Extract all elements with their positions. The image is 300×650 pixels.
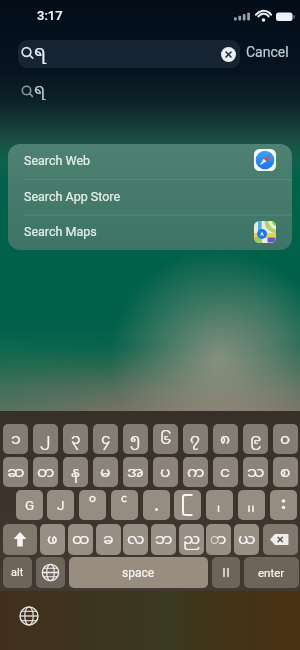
button[interactable]: alt (3, 557, 32, 588)
staticText: ဖ (47, 529, 58, 550)
button[interactable]: Cancel (246, 44, 294, 64)
button[interactable]: ခ (96, 524, 121, 555)
staticText: တ (37, 462, 55, 483)
button[interactable] (14, 601, 44, 631)
staticText: 3:17 (37, 8, 63, 23)
button[interactable]: ၅ (123, 424, 148, 454)
staticText: ဘ (155, 529, 173, 550)
staticText: န (71, 462, 80, 483)
button[interactable]: ၇ (183, 424, 208, 454)
staticText: ည (183, 529, 201, 550)
staticText: ၁ (11, 429, 21, 450)
staticText: ယ (238, 529, 256, 550)
button[interactable]: လ (123, 524, 148, 555)
button[interactable]: ၃ (63, 424, 88, 454)
button[interactable]: ပ (153, 457, 178, 487)
button[interactable]: space (69, 557, 208, 588)
button[interactable]: ဆ (3, 457, 28, 487)
button[interactable]: သ (243, 457, 268, 487)
button[interactable] (36, 557, 65, 588)
staticText: ရ (34, 41, 46, 64)
button[interactable]: G (16, 490, 43, 520)
button[interactable] (221, 47, 236, 62)
button[interactable]: J (47, 490, 74, 520)
button[interactable]: ယ (234, 524, 259, 555)
button[interactable]: ၉ (243, 424, 268, 454)
button[interactable] (8, 215, 292, 250)
button[interactable]: ၂ (33, 424, 58, 454)
button[interactable]: ၄ (93, 424, 118, 454)
staticText: ဆ (7, 462, 25, 483)
button[interactable]: ဘ (151, 524, 176, 555)
button[interactable]: တ (33, 457, 58, 487)
button[interactable]: ထ (68, 524, 93, 555)
staticText: ၃ (71, 429, 81, 450)
staticText: ၅ (130, 429, 141, 450)
button[interactable]: ဖ (40, 524, 65, 555)
staticText: J (57, 497, 65, 513)
staticText: ရ (34, 79, 46, 101)
staticText: သ (247, 462, 265, 483)
button[interactable] (111, 490, 138, 520)
button[interactable]: မ (93, 457, 118, 487)
staticText: Search Web (24, 153, 91, 168)
button[interactable]: ာ (206, 524, 231, 555)
button[interactable]: စ (273, 457, 298, 487)
button[interactable] (212, 557, 240, 588)
button[interactable] (174, 490, 201, 520)
staticText: enter (258, 566, 285, 579)
staticText: ထ (72, 529, 90, 550)
staticText: ၆ (160, 429, 172, 450)
button[interactable]: ၆ (153, 424, 178, 454)
staticText: ၀ (280, 429, 291, 450)
staticText: alt (11, 566, 24, 579)
button[interactable] (79, 490, 106, 520)
button[interactable]: င (213, 457, 238, 487)
button[interactable] (238, 490, 265, 520)
staticText: ၈ (220, 429, 231, 450)
staticText: Search Maps (24, 224, 97, 239)
button[interactable]: က (183, 457, 208, 487)
button[interactable] (3, 524, 37, 555)
staticText: ၄ (101, 429, 111, 450)
button[interactable] (206, 490, 233, 520)
button[interactable]: ၀ (273, 424, 298, 454)
staticText: G (25, 497, 35, 513)
staticText: Cancel (246, 44, 289, 60)
button[interactable]: ၈ (213, 424, 238, 454)
staticText: space (122, 566, 155, 580)
staticText: အ (127, 462, 144, 483)
staticText: ပ (160, 462, 171, 483)
staticText: Search App Store (24, 189, 121, 204)
button[interactable] (263, 524, 298, 555)
staticText: မ (100, 462, 111, 483)
button[interactable] (8, 144, 292, 180)
staticText: ၂ (40, 429, 51, 450)
staticText: က (187, 462, 205, 483)
button[interactable]: ၁ (3, 424, 28, 454)
staticText: စ (280, 462, 291, 483)
button[interactable] (18, 40, 240, 68)
button[interactable]: ည (179, 524, 204, 555)
staticText: ာ (210, 529, 227, 550)
button[interactable] (143, 490, 170, 520)
button[interactable]: enter (244, 557, 299, 588)
staticText: ၉ (250, 429, 262, 450)
button[interactable]: အ (123, 457, 148, 487)
button[interactable] (8, 180, 292, 215)
staticText: လ (127, 529, 145, 550)
staticText: ခ (103, 529, 114, 550)
button[interactable] (270, 490, 297, 520)
staticText: ၇ (190, 429, 201, 450)
button[interactable]: န (63, 457, 88, 487)
staticText: င (220, 462, 231, 483)
